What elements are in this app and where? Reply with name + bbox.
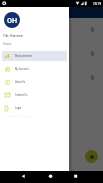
staticText: OH [7,16,18,24]
button[interactable]: Login [2,103,67,113]
button[interactable]: Measurements [2,51,67,61]
staticText: App version 2.1.0 (2020) [4,115,32,118]
staticText: Login [15,107,22,110]
button[interactable] [0,42,103,65]
button[interactable] [0,18,103,41]
button[interactable]: Add measurement [85,150,98,163]
button[interactable]: Contact Us [2,90,67,100]
button[interactable]: My Account [2,64,67,74]
button[interactable]: About Us [2,77,67,87]
staticText: Contact Us [15,94,28,97]
staticText: Ole Hansen [3,33,23,38]
button[interactable]: OH [4,12,20,28]
staticText: Farmer [3,42,12,45]
staticText: My Account [15,68,29,71]
staticText: 15:19 [93,2,101,6]
staticText: Measurements [15,55,33,58]
staticText: About Us [15,81,26,84]
button[interactable] [0,66,103,89]
